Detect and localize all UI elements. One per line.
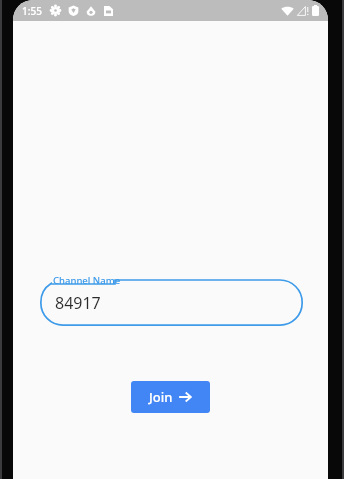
button[interactable]: Join [131, 381, 210, 413]
button[interactable]: Channel Name [40, 273, 303, 326]
staticText: Channel Name [53, 274, 121, 287]
staticText: 1:55 [22, 4, 42, 18]
staticText: Join [149, 388, 173, 406]
staticText: 84917 [55, 292, 101, 314]
other: Join arrow [178, 390, 192, 404]
